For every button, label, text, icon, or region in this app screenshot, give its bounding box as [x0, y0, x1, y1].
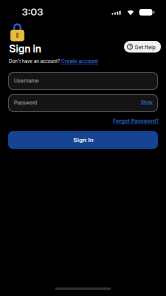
button[interactable]: Forgot Password? [113, 118, 158, 126]
staticText: Get Help [134, 44, 166, 69]
staticText: 3:03 [22, 6, 108, 54]
button[interactable]: ? [124, 41, 161, 52]
staticText: Sign in [9, 42, 138, 93]
staticText: Username [14, 77, 113, 102]
button[interactable]: Create account [61, 58, 98, 65]
staticText: Sign In [73, 136, 154, 166]
button[interactable]: Sign In [8, 131, 158, 149]
staticText: Don't have an account? [9, 58, 166, 80]
button[interactable]: Show [141, 100, 154, 107]
staticText: Show [141, 100, 166, 120]
staticText: Password [14, 99, 107, 124]
staticText: Forgot Password? [113, 118, 166, 143]
staticText: Create account [61, 58, 166, 82]
staticText: ? [129, 45, 139, 66]
